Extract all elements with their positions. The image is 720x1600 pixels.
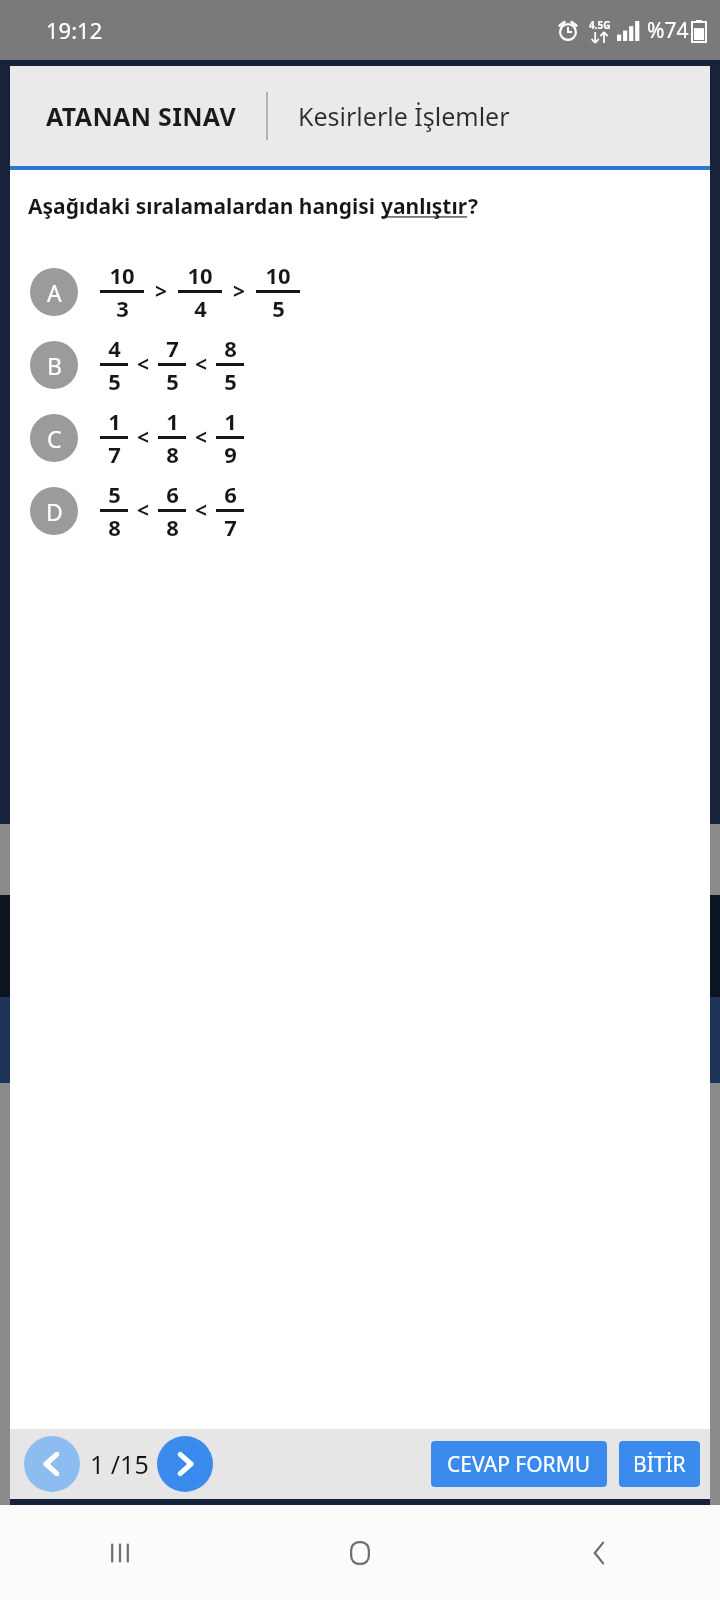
staticText: 5 <box>166 366 179 396</box>
staticText: 1 <box>166 406 179 436</box>
staticText: 7 <box>224 512 237 542</box>
button[interactable]: Sonraki soru <box>157 1436 213 1492</box>
staticText: 10 <box>187 260 213 290</box>
staticText: ATANAN SINAV <box>46 99 236 133</box>
button[interactable]: Önceki soru <box>24 1436 80 1492</box>
staticText: 8 <box>166 512 179 542</box>
staticText: < <box>137 350 150 379</box>
staticText: 3 <box>116 293 129 323</box>
staticText: Aşağıdaki sıralamalardan hangisi <box>28 192 381 221</box>
staticText: < <box>137 423 150 452</box>
staticText: < <box>195 496 208 525</box>
button[interactable]: Back <box>480 1505 720 1600</box>
staticText: 1 /15 <box>90 1447 149 1481</box>
staticText: 4 <box>194 293 207 323</box>
staticText: D <box>46 496 63 527</box>
staticText: C <box>47 423 62 454</box>
staticText: Kesirlerle İşlemler <box>298 99 510 133</box>
staticText: B <box>47 350 62 381</box>
staticText: A <box>47 277 62 308</box>
staticText: > <box>155 277 168 306</box>
staticText: 1 <box>224 406 237 436</box>
staticText: 10 <box>109 260 135 290</box>
staticText: ? <box>468 192 479 221</box>
button[interactable]: Recents <box>0 1505 240 1600</box>
staticText: 10 <box>265 260 291 290</box>
staticText: < <box>195 350 208 379</box>
staticText: 7 <box>166 333 179 363</box>
button[interactable]: Home <box>240 1505 480 1600</box>
staticText: 4.5G <box>589 18 611 32</box>
staticText: 5 <box>224 366 237 396</box>
staticText: BİTİR <box>633 1450 686 1479</box>
staticText: < <box>137 496 150 525</box>
button[interactable]: D <box>10 474 710 547</box>
staticText: 1 <box>108 406 121 436</box>
button[interactable]: ATANAN SINAV <box>10 66 710 166</box>
staticText: 7 <box>108 439 121 469</box>
staticText: CEVAP FORMU <box>447 1450 591 1479</box>
staticText: 8 <box>166 439 179 469</box>
button[interactable]: CEVAP FORMU <box>431 1441 607 1487</box>
button[interactable]: A <box>10 255 710 328</box>
staticText: 8 <box>224 333 237 363</box>
staticText: %74 <box>647 16 689 45</box>
staticText: 4 <box>108 333 121 363</box>
button[interactable]: C <box>10 401 710 474</box>
staticText: > <box>233 277 246 306</box>
staticText: 5 <box>108 479 121 509</box>
staticText: 6 <box>166 479 179 509</box>
staticText: 19:12 <box>46 15 103 45</box>
staticText: 5 <box>272 293 285 323</box>
staticText: yanlıştır <box>381 192 468 221</box>
button[interactable]: BİTİR <box>619 1441 700 1487</box>
staticText: 8 <box>108 512 121 542</box>
button[interactable]: B <box>10 328 710 401</box>
staticText: 9 <box>224 439 237 469</box>
staticText: 6 <box>224 479 237 509</box>
staticText: < <box>195 423 208 452</box>
staticText: 5 <box>108 366 121 396</box>
